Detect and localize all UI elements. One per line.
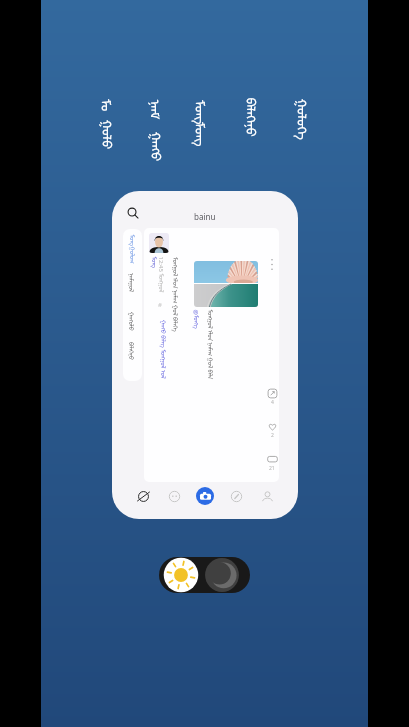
button[interactable]: ᠨᠠᠡᠮᠠᠭᠤᠯ	[123, 273, 142, 299]
button[interactable]: Camera	[196, 487, 214, 505]
button[interactable]	[149, 233, 169, 253]
staticText: ᠭᠣᠯᠤ	[97, 119, 120, 149]
staticText: ᠪᠡᠯᠡᠭᠡᠨᠤ	[127, 342, 138, 361]
button[interactable]: ᠮᠣᠩ	[123, 229, 142, 265]
staticText: ᠭᠠᠩᠤᠯᠤ	[127, 312, 138, 331]
staticText: ᠮᠣᠩᠭᠣᠯ ᠡᠯᠦᠨ ᠨᠠᠡᠮᠠᠭ ᠭᠤᠯ ᠪᠡᠯᠡ	[205, 309, 216, 379]
button[interactable]: Share	[265, 388, 279, 408]
button[interactable]: ᠭᠠᠩᠤᠯᠤ	[123, 312, 142, 338]
button[interactable]: Explore	[134, 487, 152, 505]
button[interactable]: ᠪᠡᠯᠡᠭᠡᠨᠤ	[123, 342, 142, 368]
staticText: ᠮᠣᠩ	[127, 234, 138, 246]
staticText: ᠭᠤᠯᠤᠭᠡ	[292, 98, 315, 140]
staticText: ᠮᠣᠩ	[149, 256, 160, 268]
staticText: ᠨᠠᠡᠮ	[145, 99, 168, 119]
button[interactable]: Chats	[165, 487, 183, 505]
staticText: 2	[271, 432, 274, 439]
button[interactable]: Profile	[258, 487, 276, 505]
button[interactable]: Discover	[227, 487, 245, 505]
staticText: ᠮᠣ	[97, 99, 120, 112]
staticText: ᠮᠣᠩᠭᠣᠯ ᠡᠯᠦᠨ ᠨᠠᠡᠮᠠᠭ ᠭᠤᠯ ᠪᠡᠯᠡᠭᠡ	[171, 257, 182, 332]
staticText: ᠪᠡᠯᠡᠭᠡᠨᠤ	[241, 97, 264, 137]
staticText: ᠮᠣᠩ	[191, 100, 214, 125]
staticText: bainu	[194, 211, 216, 222]
staticText: ᠭᠣᠯᠤᠭ	[127, 246, 138, 264]
button[interactable]: Toggle light and dark theme	[159, 557, 250, 593]
staticText: ᠨᠠᠡᠮᠠᠭᠤᠯ	[127, 273, 138, 292]
button[interactable]	[194, 261, 258, 307]
staticText: 21	[269, 465, 275, 472]
staticText: 4	[271, 399, 274, 406]
staticText: ᠭᠠᠩᠤ ᠪᠡᠯᠡᠭ ᠮᠣᠩᠭᠣᠯ ᠤᠯ	[159, 320, 170, 379]
button[interactable]: Like	[265, 421, 279, 441]
staticText: @ᠮᠣᠩᠭ	[191, 309, 202, 329]
staticText: ᠭᠠᠩᠤ	[146, 131, 169, 161]
button[interactable]: More options	[267, 256, 276, 272]
button[interactable]: Search	[123, 203, 143, 223]
button[interactable]: Comment	[265, 454, 279, 474]
staticText: #	[158, 301, 162, 309]
staticText: 12:45 ᠮᠣᠩᠭᠣᠯ	[156, 256, 167, 292]
staticText: ᠮᠣᠩ	[191, 122, 214, 147]
